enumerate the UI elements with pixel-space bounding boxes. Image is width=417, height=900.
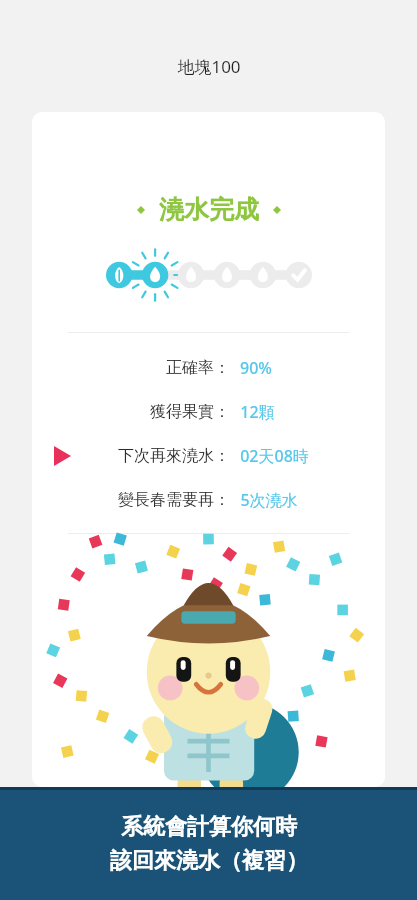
staticText: 5次澆水 <box>240 489 298 511</box>
staticText: 正確率： <box>166 358 230 378</box>
staticText: 獲得果實： <box>150 402 230 422</box>
staticText: 該回來澆水（複習） <box>110 847 308 875</box>
staticText: 系統會計算你何時 <box>121 813 297 841</box>
staticText: 地塊100 <box>177 55 241 78</box>
staticText: 變長春需要再： <box>118 490 230 510</box>
staticText: 90% <box>240 357 272 379</box>
button[interactable]: 系統會計算你何時 <box>0 787 417 900</box>
staticText: 下次再來澆水： <box>118 446 230 466</box>
staticText: 02天08時 <box>240 445 309 467</box>
staticText: 澆水完成 <box>159 194 259 225</box>
staticText: 12顆 <box>240 401 275 423</box>
